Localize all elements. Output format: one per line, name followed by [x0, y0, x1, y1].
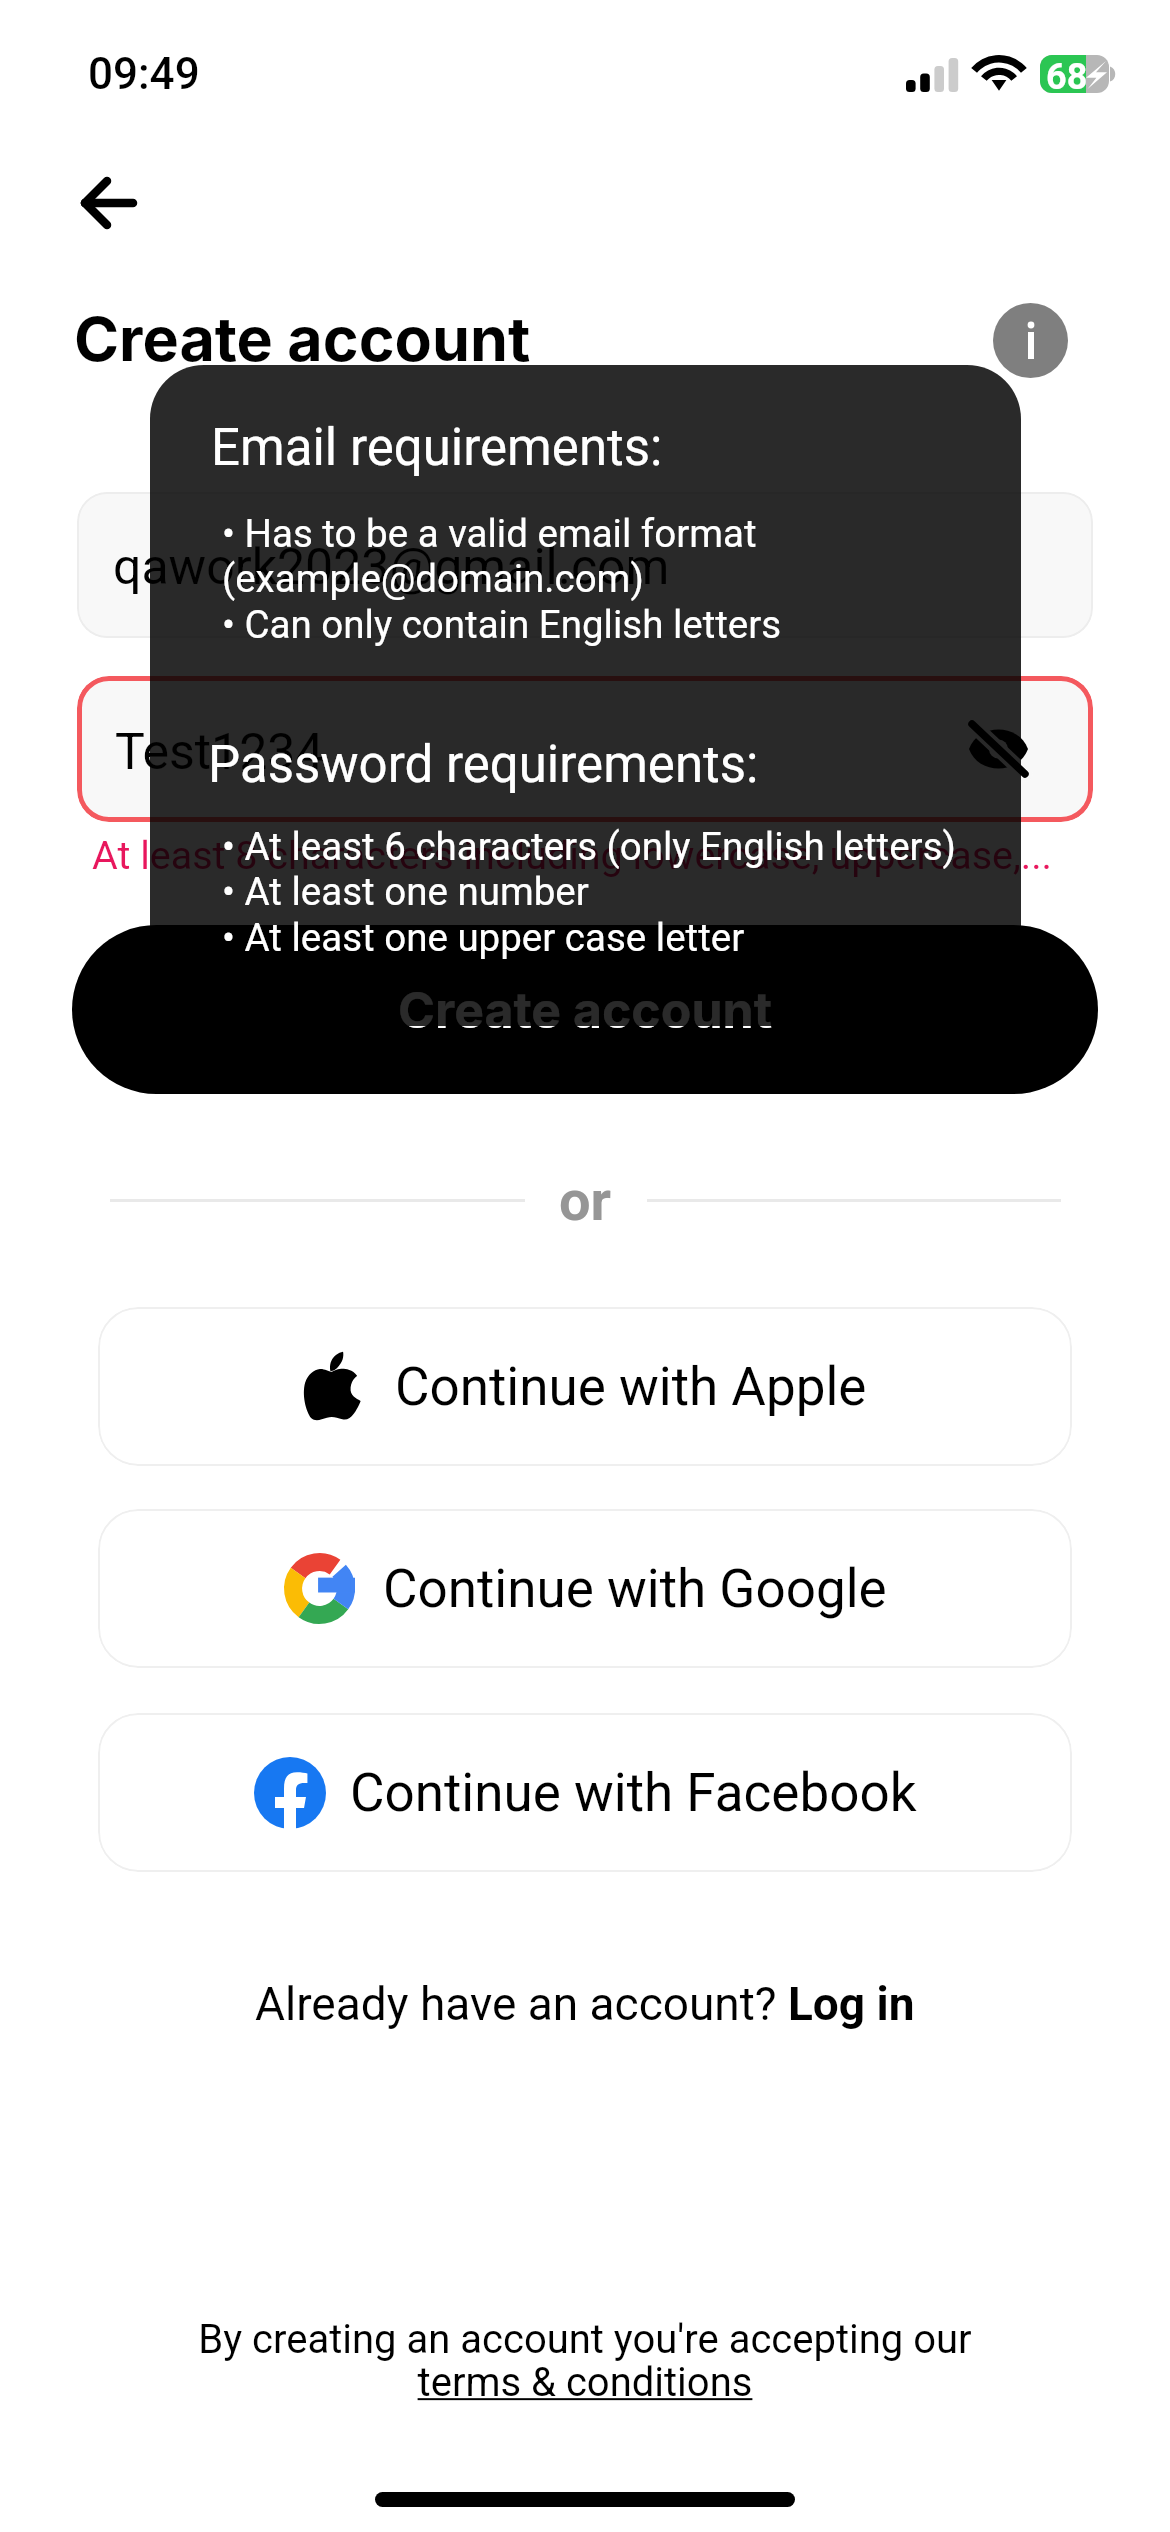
staticText: Create account: [74, 302, 531, 376]
staticText: Password requirements:: [208, 735, 759, 795]
staticText: 09:49: [88, 48, 200, 100]
button[interactable]: Test1234: [77, 676, 1093, 822]
staticText: Test1234: [115, 723, 324, 782]
staticText: Continue with Google: [383, 1558, 887, 1620]
button[interactable]: Already have an account? Log in: [255, 1977, 915, 2031]
button[interactable]: Continue with Facebook: [98, 1713, 1072, 1872]
staticText: Email requirements:: [211, 418, 663, 478]
button[interactable]: Show password: [950, 709, 1046, 789]
staticText: • At least 6 characters (only English le…: [222, 824, 1042, 961]
staticText: At least 8 characters including lowercas…: [92, 832, 1053, 878]
button[interactable]: Continue with Google: [98, 1509, 1072, 1668]
button[interactable]: Back: [62, 160, 154, 246]
staticText: or: [559, 1168, 612, 1234]
staticText: Continue with Facebook: [350, 1762, 917, 1824]
staticText: Create account: [398, 980, 772, 1040]
staticText: qawork2023@gmail.com: [113, 538, 670, 597]
staticText: • Has to be a valid email format (exampl…: [222, 511, 1022, 648]
button[interactable]: qawork2023@gmail.com: [77, 492, 1093, 638]
button[interactable]: Create account: [72, 925, 1098, 1094]
staticText: 68: [1046, 56, 1088, 98]
button[interactable]: Continue with Apple: [98, 1307, 1072, 1466]
button[interactable]: Info: [993, 303, 1068, 378]
button[interactable]: By creating an account you're accepting …: [198, 2316, 972, 2406]
staticText: Continue with Apple: [395, 1356, 867, 1418]
